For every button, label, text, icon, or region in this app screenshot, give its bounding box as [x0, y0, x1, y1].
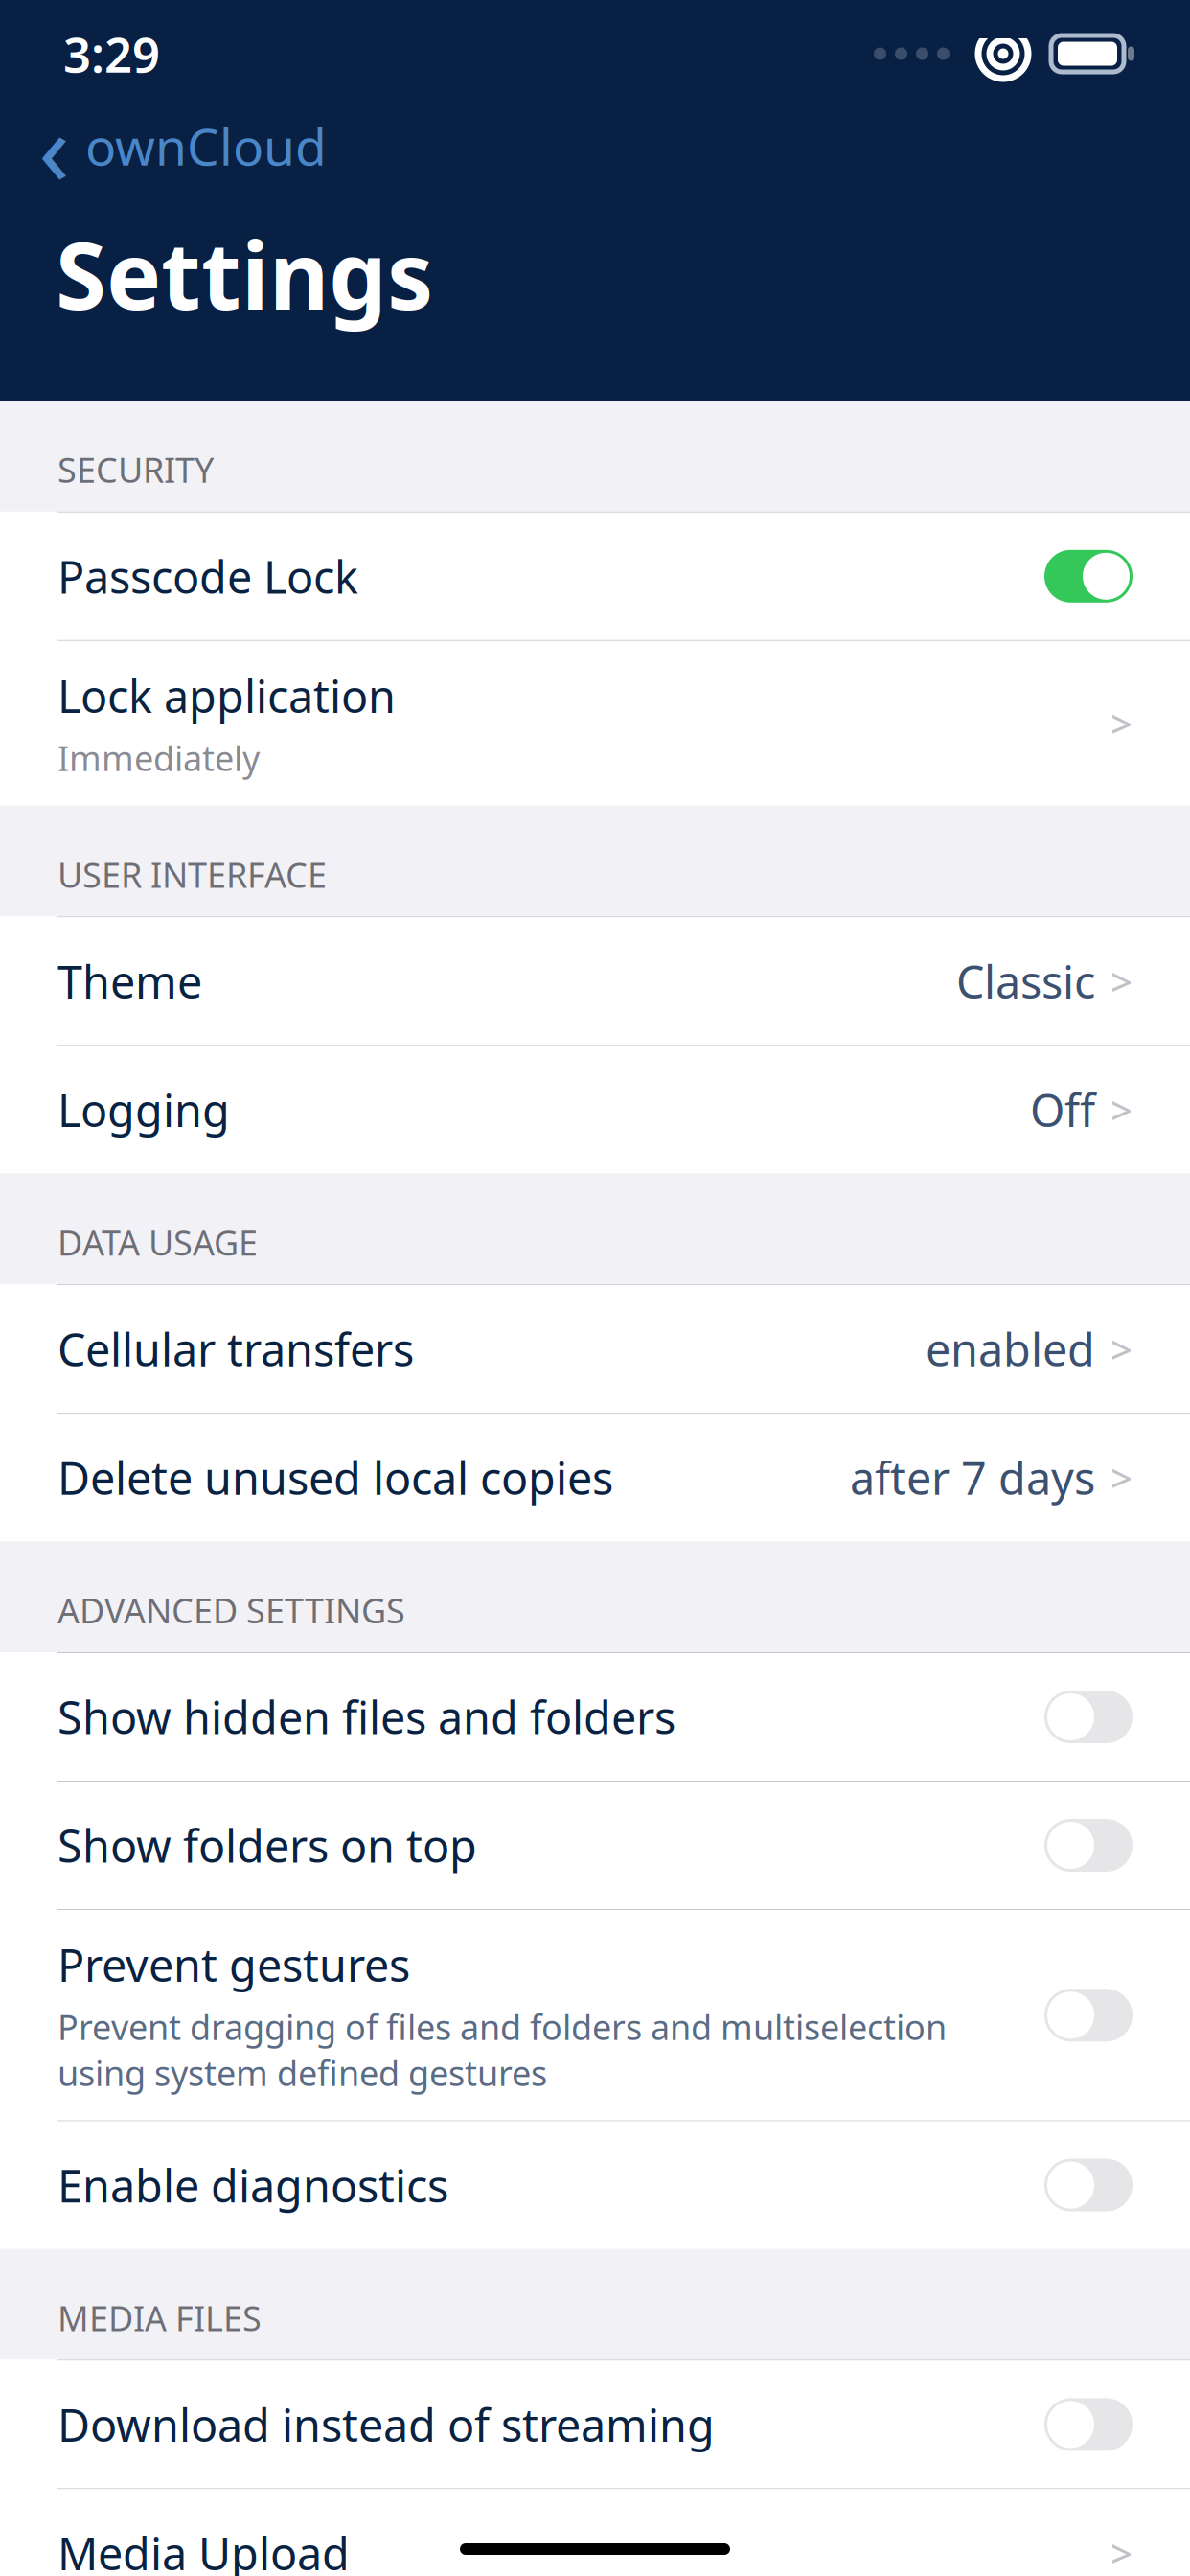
button[interactable]: Lock application [0, 641, 1190, 806]
staticText: enabled [926, 1319, 1095, 1379]
staticText: MEDIA FILES [57, 2295, 262, 2341]
staticText: > [1110, 1084, 1133, 1135]
staticText: > [1110, 956, 1133, 1007]
staticText: Prevent gestures [57, 1935, 410, 1994]
button[interactable]: Logging [0, 1046, 1190, 1173]
button[interactable]: Passcode Lock [0, 513, 1190, 640]
staticText: Show folders on top [57, 1816, 477, 1875]
button[interactable]: ‹ [0, 107, 1190, 184]
staticText: Download instead of streaming [57, 2395, 715, 2454]
button[interactable]: Media Upload [0, 2489, 1190, 2576]
staticText: Cellular transfers [57, 1319, 414, 1379]
staticText: SECURITY [57, 447, 214, 492]
staticText: ownCloud [85, 112, 327, 180]
staticText: after 7 days [850, 1448, 1095, 1507]
button[interactable]: Show hidden files and folders [0, 1653, 1190, 1781]
button[interactable]: Download instead of streaming [0, 2361, 1190, 2488]
staticText: > [1110, 1452, 1133, 1503]
staticText: Settings [56, 213, 433, 335]
staticText: Enable diagnostics [57, 2155, 448, 2215]
staticText: DATA USAGE [57, 1219, 258, 1265]
staticText: Delete unused local copies [57, 1448, 613, 1507]
staticText: Theme [57, 952, 202, 1011]
staticText: ADVANCED SETTINGS [57, 1587, 405, 1633]
button[interactable]: Delete unused local copies [0, 1414, 1190, 1541]
staticText: 3:29 [63, 21, 160, 86]
staticText: Lock application [57, 666, 396, 725]
staticText: > [1110, 2527, 1133, 2576]
staticText: Immediately [57, 735, 260, 781]
staticText: Prevent dragging of files and folders an… [57, 2004, 947, 2095]
staticText: Passcode Lock [57, 547, 358, 606]
staticText: Classic [956, 952, 1095, 1011]
staticText: > [1110, 1324, 1133, 1374]
button[interactable]: Enable diagnostics [0, 2121, 1190, 2249]
button[interactable]: Cellular transfers [0, 1285, 1190, 1413]
staticText: Show hidden files and folders [57, 1687, 675, 1747]
staticText: > [1110, 698, 1133, 749]
button[interactable]: Show folders on top [0, 1782, 1190, 1909]
staticText: ‹ [38, 78, 70, 214]
staticText: Logging [57, 1080, 230, 1139]
staticText: Off [1030, 1080, 1095, 1139]
button[interactable]: Prevent gestures [0, 1910, 1190, 2120]
staticText: Media Upload [57, 2523, 350, 2576]
staticText: USER INTERFACE [57, 852, 327, 897]
button[interactable]: Theme [0, 918, 1190, 1045]
